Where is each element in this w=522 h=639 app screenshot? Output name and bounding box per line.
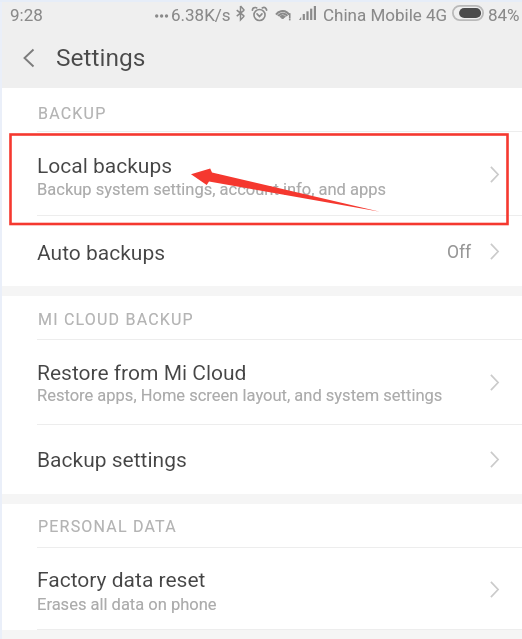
- staticText: 6.38K/s: [171, 5, 231, 25]
- button[interactable]: Auto backups: [0, 216, 522, 286]
- staticText: Restore from Mi Cloud: [37, 361, 247, 386]
- staticText: PERSONAL DATA: [38, 517, 177, 536]
- staticText: Auto backups: [37, 241, 166, 266]
- staticText: MI CLOUD BACKUP: [38, 310, 194, 329]
- button[interactable]: Factory data reset: [0, 548, 522, 630]
- staticText: Local backups: [37, 154, 173, 179]
- staticText: Off: [447, 242, 472, 263]
- staticText: Restore apps, Home screen layout, and sy…: [37, 386, 443, 405]
- staticText: Erases all data on phone: [37, 595, 217, 614]
- button[interactable]: Backup settings: [0, 425, 522, 494]
- staticText: BACKUP: [38, 104, 107, 123]
- staticText: 9:28: [10, 5, 43, 25]
- staticText: 84%: [488, 5, 520, 25]
- staticText: Backup system settings, account info, an…: [37, 180, 387, 199]
- staticText: Settings: [56, 43, 146, 72]
- staticText: China Mobile 4G: [323, 5, 448, 25]
- button[interactable]: Restore from Mi Cloud: [0, 340, 522, 425]
- button[interactable]: Back: [0, 30, 56, 88]
- staticText: Factory data reset: [37, 568, 206, 593]
- button[interactable]: Local backups: [0, 132, 522, 216]
- staticText: Backup settings: [37, 448, 187, 473]
